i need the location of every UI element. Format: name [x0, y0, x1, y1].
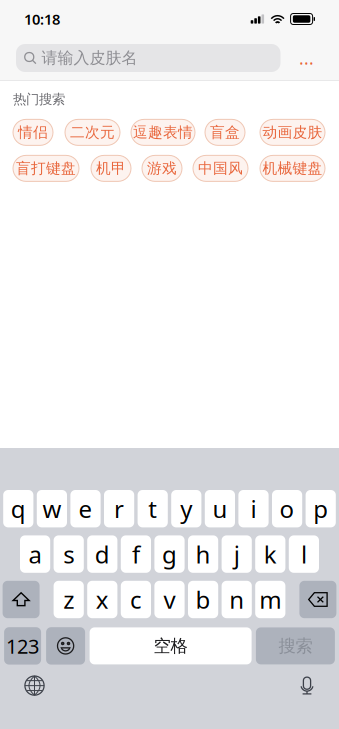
staticText: 二次元	[70, 123, 115, 141]
button[interactable]: 盲盒	[205, 119, 245, 145]
staticText: 情侣	[18, 123, 48, 141]
button[interactable]: f	[121, 535, 151, 573]
button[interactable]: o	[272, 490, 302, 527]
staticText: 盲打键盘	[16, 159, 76, 177]
button[interactable]: 情侣	[13, 119, 53, 145]
button[interactable]: u	[205, 490, 235, 527]
button[interactable]: 游戏	[142, 155, 182, 181]
button[interactable]: Emoji	[46, 627, 85, 665]
button[interactable]: 二次元	[65, 119, 120, 145]
button[interactable]: w	[37, 490, 67, 527]
staticText: z	[63, 584, 74, 615]
button[interactable]: j	[222, 535, 252, 573]
staticText: j	[234, 538, 240, 570]
button[interactable]: 取消	[299, 44, 329, 72]
staticText: p	[313, 493, 328, 525]
button[interactable]: c	[121, 581, 151, 618]
button[interactable]: 动画皮肤	[260, 119, 325, 145]
button[interactable]: 搜索	[256, 627, 335, 664]
button[interactable]: i	[238, 490, 269, 527]
staticText: 热门搜索	[13, 91, 65, 107]
button[interactable]: p	[306, 490, 336, 527]
staticText: 空格	[154, 635, 188, 657]
button[interactable]: 机甲	[91, 155, 131, 181]
staticText: 中国风	[198, 159, 243, 177]
button[interactable]: Delete	[299, 581, 336, 618]
button[interactable]: x	[87, 581, 117, 618]
button[interactable]: b	[188, 581, 218, 618]
button[interactable]: r	[104, 490, 134, 527]
staticText: 搜索	[278, 635, 312, 657]
staticText: t	[148, 493, 157, 525]
staticText: w	[42, 493, 61, 525]
staticText: v	[163, 584, 175, 615]
button[interactable]: d	[87, 535, 117, 573]
button[interactable]: Switch keyboard	[24, 675, 45, 696]
button[interactable]: Shift	[3, 581, 40, 618]
staticText: 机械键盘	[262, 159, 322, 177]
button[interactable]: g	[154, 535, 185, 573]
button[interactable]: 逗趣表情	[131, 119, 195, 145]
button[interactable]: s	[54, 535, 84, 573]
staticText: l	[301, 538, 307, 570]
staticText: 逗趣表情	[133, 123, 193, 141]
staticText: y	[180, 493, 192, 525]
button[interactable]: q	[3, 490, 33, 527]
button[interactable]: a	[20, 535, 50, 573]
staticText: 机甲	[96, 159, 126, 177]
button[interactable]: Numbers	[4, 627, 41, 665]
staticText: m	[259, 584, 281, 615]
staticText: h	[196, 538, 211, 570]
button[interactable]: l	[289, 535, 319, 573]
button[interactable]: z	[54, 581, 84, 618]
staticText: s	[63, 538, 74, 570]
staticText: i	[250, 493, 256, 525]
button[interactable]: t	[138, 490, 168, 527]
button[interactable]: e	[70, 490, 101, 527]
staticText: c	[130, 584, 142, 615]
button[interactable]: k	[255, 535, 285, 573]
staticText: 动画皮肤	[262, 123, 322, 141]
button[interactable]: 中国风	[193, 155, 248, 181]
staticText: g	[162, 538, 177, 570]
staticText: 123	[6, 633, 39, 659]
button[interactable]: 机械键盘	[260, 155, 325, 181]
staticText: d	[95, 538, 110, 570]
button[interactable]: m	[255, 581, 285, 618]
button[interactable]: 空格	[90, 627, 252, 664]
staticText: x	[96, 584, 109, 615]
staticText: b	[196, 584, 211, 615]
button[interactable]: v	[154, 581, 185, 618]
button[interactable]: y	[171, 490, 201, 527]
button[interactable]: 盲打键盘	[13, 155, 79, 181]
staticText: 10:18	[24, 9, 60, 29]
staticText: k	[264, 538, 277, 570]
staticText: n	[229, 584, 244, 615]
staticText: o	[280, 493, 295, 525]
staticText: e	[78, 493, 92, 525]
staticText: q	[11, 493, 26, 525]
staticText: f	[132, 538, 140, 570]
button[interactable]: h	[188, 535, 218, 573]
staticText: 取消	[299, 46, 329, 69]
staticText: a	[29, 538, 42, 570]
staticText: r	[114, 493, 124, 525]
button[interactable]: n	[222, 581, 252, 618]
staticText: 盲盒	[210, 123, 240, 141]
staticText: 游戏	[147, 159, 177, 177]
staticText: 请输入皮肤名	[41, 48, 137, 68]
button[interactable]: Dictation	[299, 676, 315, 695]
staticText: u	[212, 493, 227, 525]
